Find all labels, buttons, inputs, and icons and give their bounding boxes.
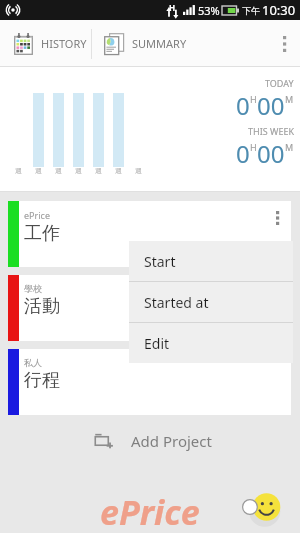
staticText: 週 <box>115 166 122 175</box>
staticText: 00 <box>257 137 285 170</box>
staticText: HISTORY <box>41 36 87 51</box>
staticText: Add Project <box>131 431 212 451</box>
staticText: 週 <box>35 166 42 175</box>
staticText: TODAY <box>265 77 294 89</box>
button[interactable]: 私人 <box>8 349 291 415</box>
staticText: THIS WEEK <box>248 125 294 137</box>
button[interactable]: Start <box>129 241 293 281</box>
staticText: SUMMARY <box>132 36 187 51</box>
staticText: Edit <box>144 334 170 353</box>
staticText: 週 <box>135 166 142 175</box>
staticText: H <box>250 141 257 153</box>
staticText: 週 <box>55 166 62 175</box>
staticText: ePrice <box>24 209 50 221</box>
staticText: 週 <box>95 166 102 175</box>
button[interactable]: Add Project <box>0 415 300 467</box>
staticText: 活動 <box>24 295 60 318</box>
button[interactable]: Started at <box>129 282 293 322</box>
staticText: 學校 <box>24 283 42 294</box>
staticText: M <box>285 141 294 153</box>
staticText: 下午 <box>242 5 260 16</box>
staticText: 工作 <box>24 222 60 245</box>
staticText: Start <box>144 252 176 271</box>
staticText: Started at <box>144 293 209 312</box>
staticText: 00 <box>257 89 285 122</box>
button[interactable]: SUMMARY <box>92 20 212 67</box>
button[interactable]: HISTORY <box>0 20 91 67</box>
staticText: 週 <box>15 166 22 175</box>
button[interactable]: 學校 <box>8 275 291 341</box>
button[interactable]: Project options <box>265 201 291 235</box>
staticText: 行程 <box>24 369 60 392</box>
staticText: 私人 <box>24 357 42 368</box>
staticText: H <box>169 2 176 13</box>
staticText: 週 <box>75 166 82 175</box>
staticText: H <box>250 93 257 105</box>
staticText: 0 <box>236 89 250 122</box>
staticText: M <box>285 93 294 105</box>
staticText: 53% <box>198 3 220 18</box>
staticText: 10:30 <box>262 1 296 19</box>
staticText: 0 <box>236 137 250 170</box>
staticText: ePrice <box>100 489 200 533</box>
button[interactable]: Edit <box>129 323 293 363</box>
button[interactable]: More options <box>270 20 300 67</box>
button[interactable]: ePrice <box>8 201 291 267</box>
